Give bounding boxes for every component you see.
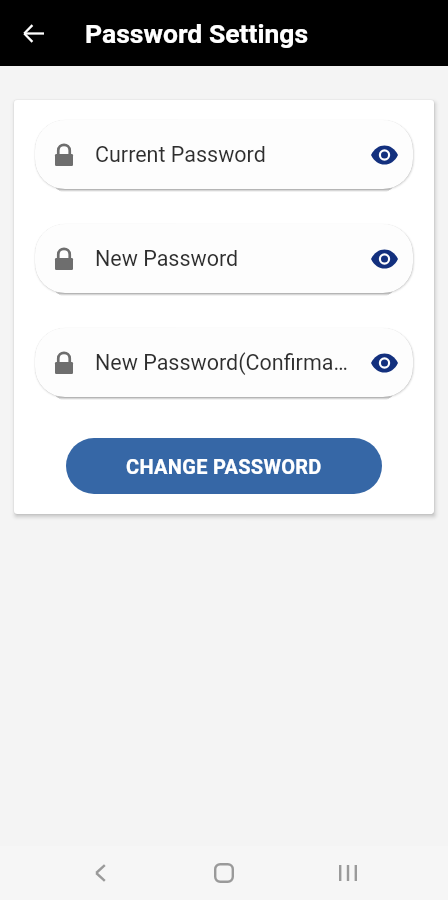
button[interactable]: Show password xyxy=(364,135,404,175)
button[interactable]: Current Password xyxy=(35,120,413,189)
button[interactable]: Recent apps xyxy=(324,849,372,897)
button[interactable]: CHANGE PASSWORD xyxy=(66,438,382,494)
button[interactable]: New Password xyxy=(35,224,413,293)
staticText: New Password xyxy=(95,246,350,271)
staticText: New Password(Confirmation) xyxy=(95,350,350,375)
button[interactable]: Show password xyxy=(364,239,404,279)
button[interactable]: New Password(Confirmation) xyxy=(35,328,413,397)
staticText: CHANGE PASSWORD xyxy=(126,455,322,478)
button[interactable]: Show password xyxy=(364,343,404,383)
button[interactable]: Back xyxy=(11,11,55,55)
button[interactable]: Home xyxy=(200,849,248,897)
button[interactable]: Back xyxy=(76,849,124,897)
staticText: Current Password xyxy=(95,142,350,167)
staticText: Password Settings xyxy=(85,18,309,49)
